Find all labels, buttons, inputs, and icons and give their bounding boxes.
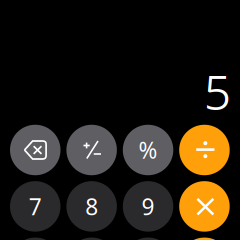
button[interactable]: Plus minus	[66, 125, 117, 175]
staticText: 5	[204, 59, 231, 124]
button[interactable]: 7	[10, 181, 60, 232]
button[interactable]: 6	[123, 238, 173, 240]
button[interactable]: Percent	[123, 125, 173, 175]
button[interactable]: Multiply	[179, 181, 230, 232]
button[interactable]: 5	[66, 238, 117, 240]
button[interactable]: 9	[123, 181, 173, 232]
staticText: %	[139, 135, 158, 165]
button[interactable]: 4	[10, 238, 60, 240]
staticText: 8	[85, 191, 98, 221]
button[interactable]: 8	[66, 181, 117, 232]
button[interactable]: Minus	[179, 238, 230, 240]
staticText: 7	[29, 191, 42, 221]
button[interactable]: Delete	[10, 125, 60, 175]
staticText: 9	[142, 191, 155, 221]
button[interactable]: Divide	[179, 125, 230, 175]
